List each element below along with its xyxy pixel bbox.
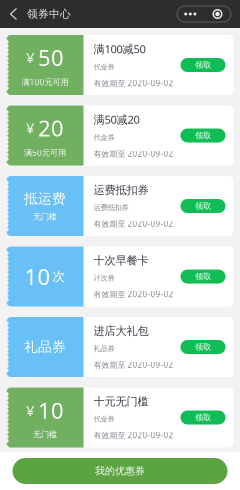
staticText: 50 (38, 42, 64, 72)
staticText: 满50减20 (93, 112, 139, 127)
button[interactable]: 我的优惠券 (12, 458, 227, 484)
staticText: 十次早餐卡 (93, 253, 148, 267)
button[interactable]: 领取 (180, 340, 225, 354)
staticText: 有效期至 2020-09-02 (93, 289, 173, 300)
staticText: 满100减50 (93, 41, 145, 57)
staticText: 满50元可用 (24, 147, 66, 158)
staticText: 运费抵扣券 (93, 203, 128, 212)
staticText: 运费抵扣券 (93, 183, 148, 197)
staticText: 有效期至 2020-09-02 (93, 430, 173, 441)
staticText: 无门槛 (33, 211, 57, 222)
staticText: 领券中心 (27, 7, 71, 21)
button[interactable]: 领取 (180, 410, 225, 424)
button[interactable]: 领取 (180, 199, 225, 213)
button[interactable]: 领取 (180, 128, 225, 142)
staticText: 礼品券 (24, 338, 66, 356)
staticText: 10 (24, 261, 50, 291)
staticText: 次 (52, 268, 65, 284)
button[interactable]: Back (0, 0, 27, 28)
staticText: 礼品券 (93, 344, 114, 353)
staticText: 有效期至 2020-09-02 (93, 359, 173, 370)
staticText: 10 (38, 395, 64, 425)
staticText: 有效期至 2020-09-02 (93, 148, 173, 159)
staticText: 领取 (195, 412, 211, 423)
staticText: ¥ (26, 400, 34, 420)
button[interactable]: 领取 (180, 58, 225, 72)
staticText: 无门槛 (33, 429, 57, 440)
staticText: 有效期至 2020-09-02 (93, 78, 173, 89)
staticText: 抵运费 (24, 190, 66, 207)
staticText: 20 (38, 113, 64, 143)
staticText: 有效期至 2020-09-02 (93, 218, 173, 229)
staticText: 领取 (195, 271, 211, 282)
staticText: 满100元可用 (21, 76, 68, 88)
button[interactable]: 领取 (180, 269, 225, 283)
staticText: 进店大礼包 (93, 324, 148, 338)
staticText: 领取 (195, 201, 211, 211)
staticText: ¥ (26, 118, 34, 138)
staticText: 领取 (195, 130, 211, 141)
staticText: 领取 (195, 60, 211, 70)
staticText: 我的优惠券 (95, 465, 145, 477)
staticText: 代金券 (93, 63, 114, 72)
staticText: 代金券 (93, 414, 114, 424)
staticText: 代金券 (93, 133, 114, 142)
staticText: 十元无门槛 (93, 394, 148, 408)
button[interactable]: Menu (177, 6, 231, 22)
staticText: 计次券 (93, 273, 114, 283)
staticText: 领取 (195, 342, 211, 352)
staticText: ¥ (26, 47, 34, 67)
